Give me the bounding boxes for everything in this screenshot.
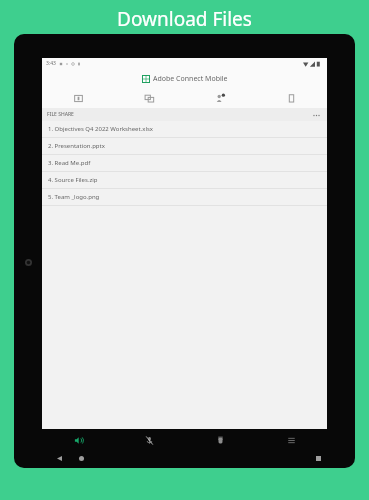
button[interactable]: Menu: [256, 432, 327, 448]
staticText: Adobe Connect Mobile: [153, 74, 228, 84]
button[interactable]: 2. Presentation.pptx: [42, 138, 327, 154]
button[interactable]: More options: [310, 109, 322, 121]
staticText: Download Files: [0, 6, 369, 32]
staticText: 2. Presentation.pptx: [48, 142, 105, 150]
staticText: 3. Read Me.pdf: [48, 159, 91, 167]
staticText: 3:43: [46, 60, 56, 67]
button[interactable]: Home: [74, 451, 88, 465]
button[interactable]: 4. Source Files.zip: [42, 172, 327, 188]
staticText: FILE SHARE: [47, 111, 74, 118]
button[interactable]: Chat: [114, 88, 185, 108]
button[interactable]: Speaker on: [42, 432, 114, 448]
staticText: 5. Team _logo.png: [48, 193, 100, 201]
button[interactable]: Back: [52, 451, 66, 465]
button[interactable]: Recents: [311, 451, 325, 465]
staticText: 1. Objectives Q4 2022 Worksheet.xlsx: [48, 125, 154, 133]
button[interactable]: 1. Objectives Q4 2022 Worksheet.xlsx: [42, 121, 327, 137]
button[interactable]: Microphone muted: [114, 432, 185, 448]
button[interactable]: Files: [256, 88, 327, 108]
button[interactable]: Attendees: [185, 88, 256, 108]
button[interactable]: 5. Team _logo.png: [42, 189, 327, 205]
button[interactable]: 3. Read Me.pdf: [42, 155, 327, 171]
staticText: 4. Source Files.zip: [48, 176, 98, 184]
button[interactable]: Raise hand: [185, 432, 256, 448]
button[interactable]: Share pod: [42, 88, 114, 108]
